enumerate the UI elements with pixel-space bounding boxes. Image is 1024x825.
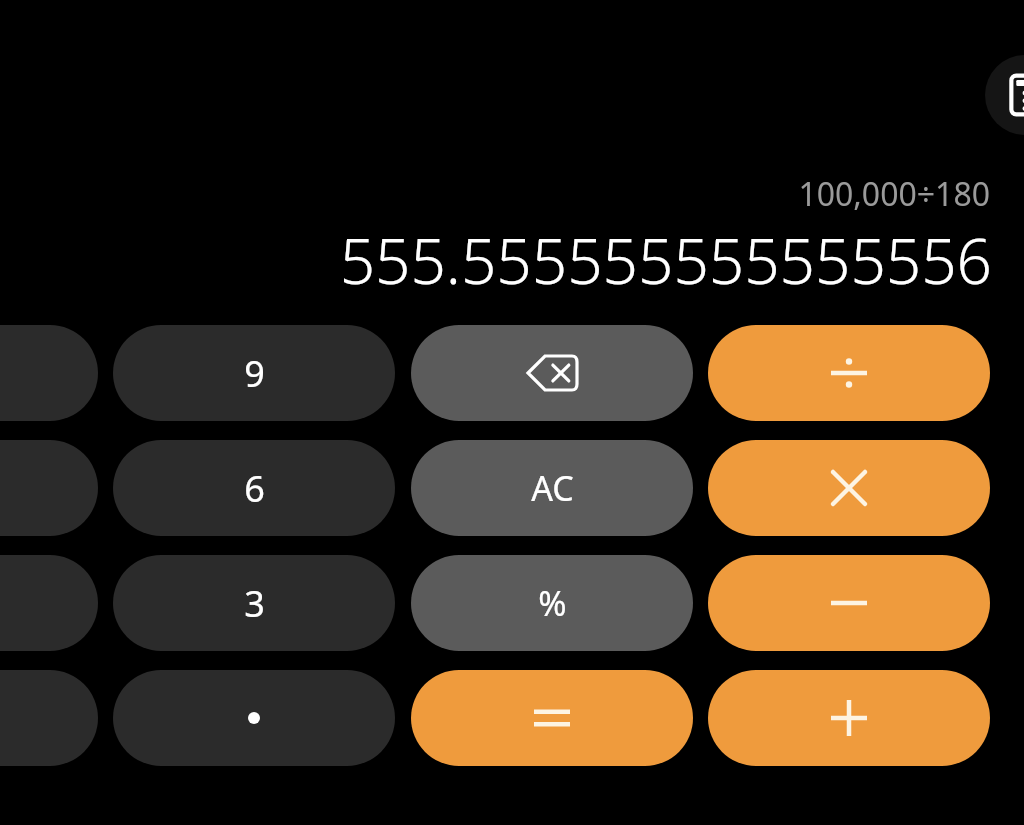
staticText: 3: [244, 579, 265, 628]
button[interactable]: Add: [708, 670, 990, 766]
button[interactable]: 8: [0, 325, 98, 421]
staticText: 100,000÷180: [798, 172, 990, 216]
button[interactable]: Equals: [411, 670, 693, 766]
button[interactable]: 6: [113, 440, 395, 536]
staticText: %: [538, 580, 567, 626]
button[interactable]: 5: [0, 440, 98, 536]
button[interactable]: %: [411, 555, 693, 651]
button[interactable]: Multiply: [708, 440, 990, 536]
button[interactable]: Subtract: [708, 555, 990, 651]
button[interactable]: 2: [0, 555, 98, 651]
button[interactable]: 3: [113, 555, 395, 651]
button[interactable]: Backspace: [411, 325, 693, 421]
button[interactable]: AC: [411, 440, 693, 536]
button[interactable]: Decimal point: [113, 670, 395, 766]
button[interactable]: Calculator mode: [985, 55, 1024, 135]
button[interactable]: 9: [113, 325, 395, 421]
staticText: AC: [531, 465, 574, 511]
button[interactable]: 0: [0, 670, 98, 766]
staticText: 6: [244, 464, 265, 513]
staticText: 9: [244, 349, 265, 398]
button[interactable]: Divide: [708, 325, 990, 421]
staticText: 555.555555555555556: [339, 218, 992, 302]
